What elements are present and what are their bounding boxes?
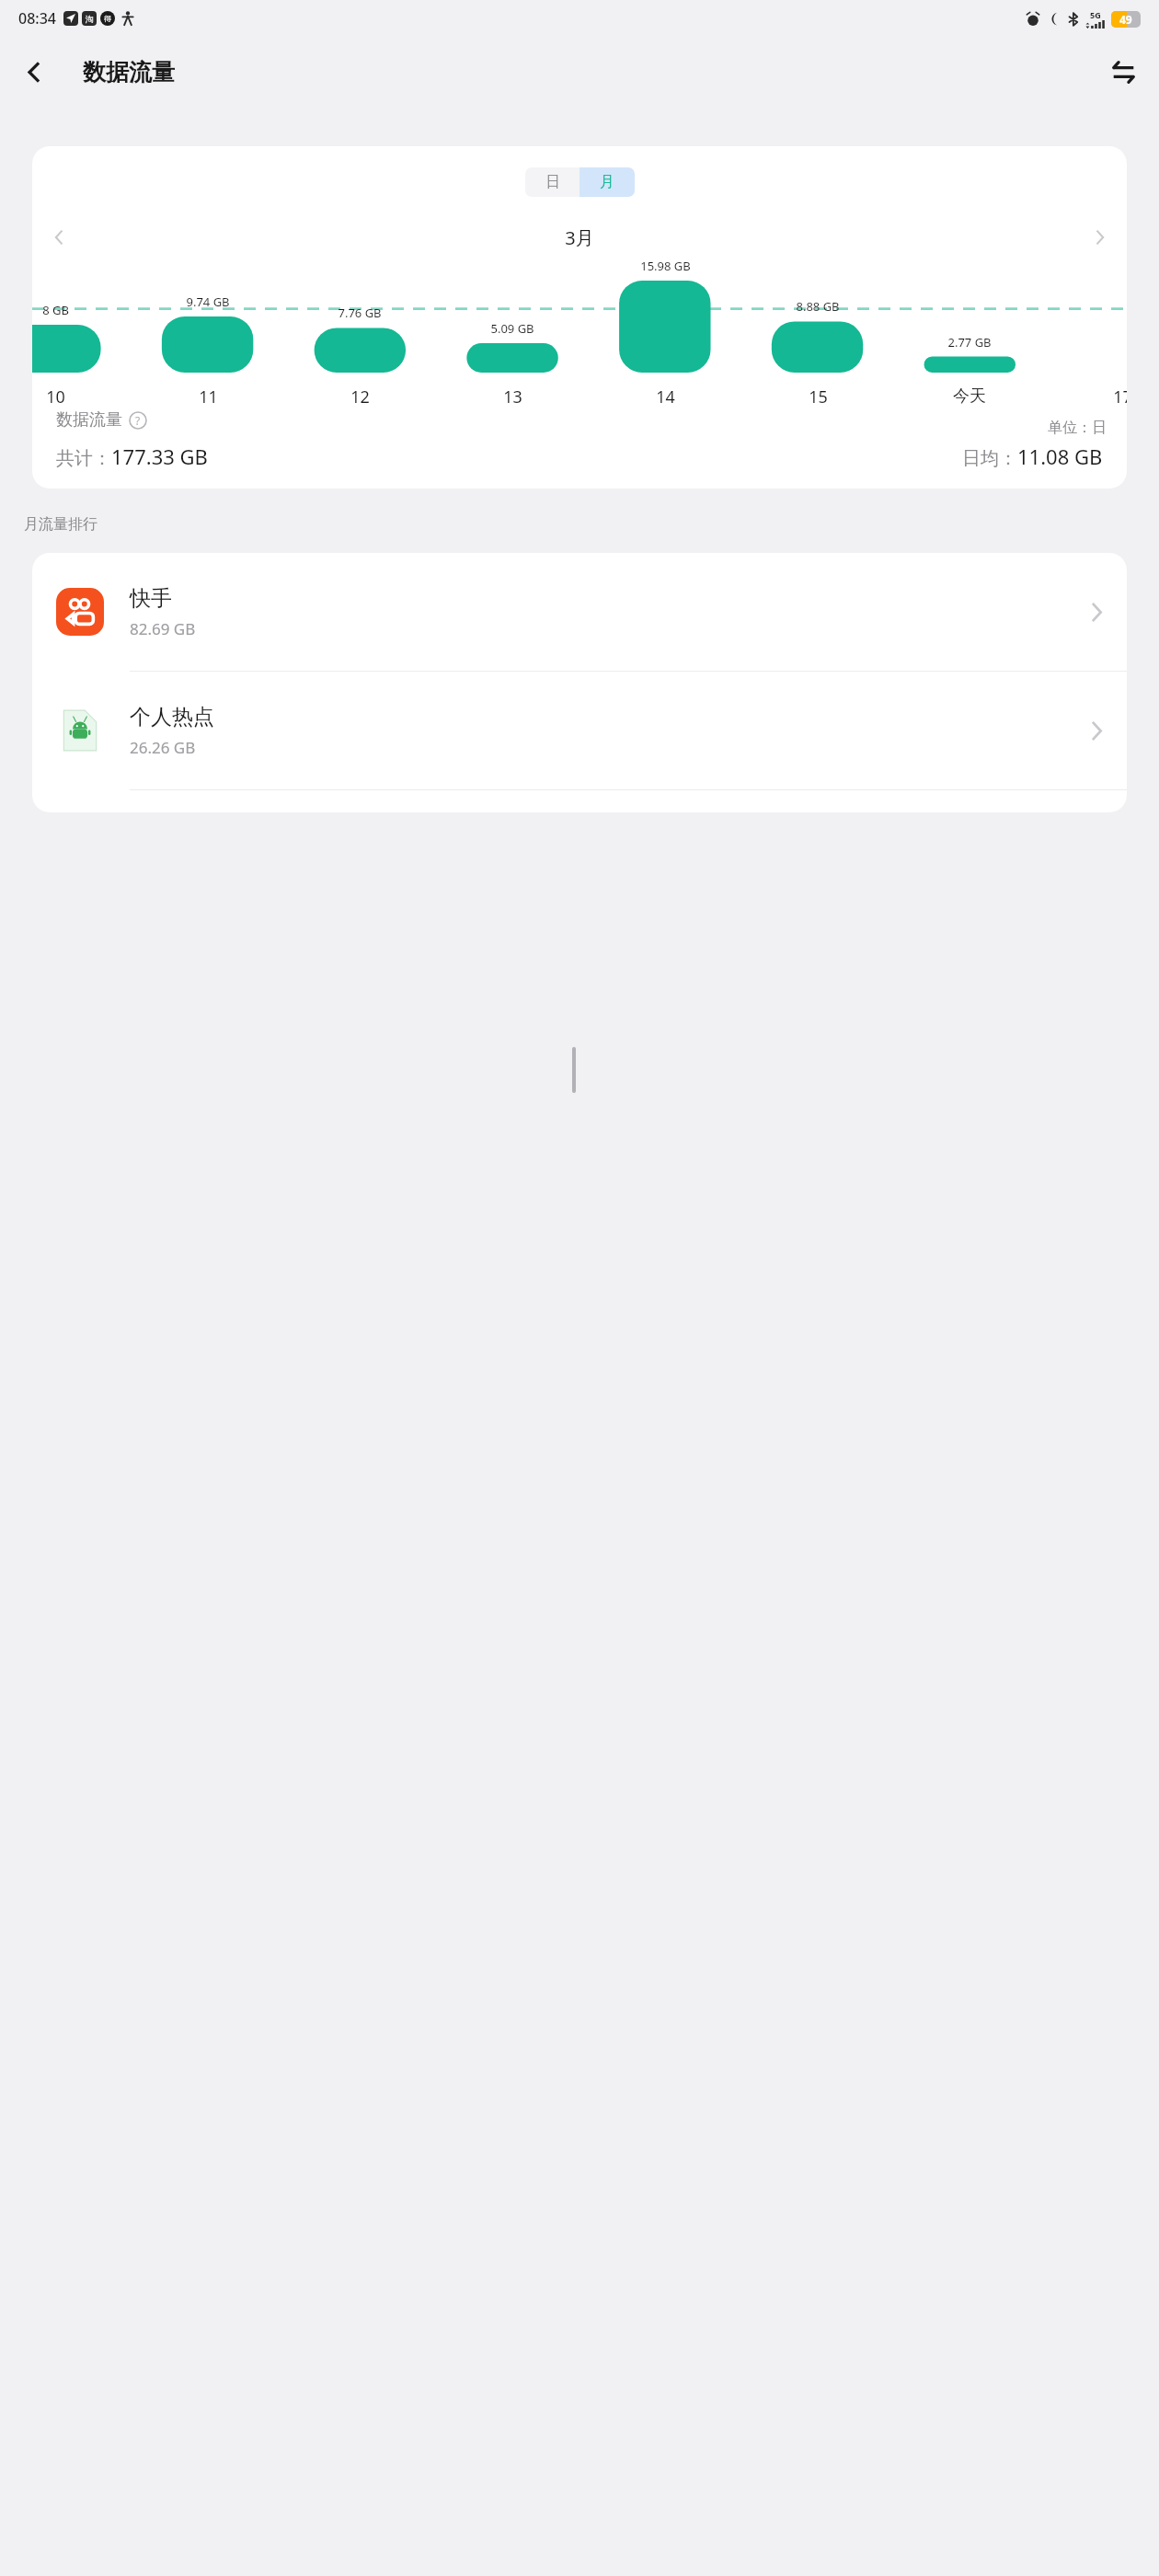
- staticText: 177.33 GB: [111, 443, 208, 470]
- staticText: 月: [600, 173, 614, 191]
- staticText: 5.09 GB: [490, 320, 534, 337]
- staticText: 月流量排行: [24, 515, 98, 534]
- staticText: 08:34: [18, 8, 56, 29]
- button[interactable]: 日: [525, 167, 579, 197]
- staticText: 个人热点: [130, 704, 214, 730]
- button[interactable]: 个人热点: [32, 672, 1127, 790]
- staticText: 26.26 GB: [130, 737, 196, 758]
- staticText: 今天: [953, 385, 986, 407]
- staticText: 15: [809, 385, 828, 408]
- staticText: 11.08 GB: [1017, 443, 1103, 470]
- staticText: 5G: [1090, 9, 1101, 20]
- staticText: 12: [350, 385, 370, 408]
- staticText: 快手: [130, 585, 172, 612]
- staticText: 数据流量: [56, 409, 122, 431]
- staticText: 共计：: [56, 447, 111, 470]
- staticText: 日均：: [962, 447, 1017, 470]
- staticText: 2.77 GB: [947, 334, 992, 351]
- staticText: 15.98 GB: [640, 258, 691, 274]
- button[interactable]: 快手: [32, 553, 1127, 672]
- staticText: 8 GB: [42, 302, 69, 318]
- staticText: 14: [656, 385, 675, 408]
- staticText: 82.69 GB: [130, 618, 196, 639]
- staticText: 8.88 GB: [796, 298, 840, 315]
- staticText: 日: [545, 173, 560, 191]
- staticText: 11: [199, 385, 218, 408]
- staticText: 17: [1113, 385, 1127, 408]
- button[interactable]: 下个月: [1079, 218, 1121, 257]
- staticText: 单位：日: [1048, 419, 1107, 437]
- button[interactable]: 月: [579, 167, 635, 197]
- button[interactable]: 返回: [9, 47, 59, 97]
- staticText: 49: [1119, 12, 1132, 27]
- button[interactable]: 切换: [1098, 47, 1148, 97]
- staticText: 数据流量: [83, 58, 175, 86]
- staticText: 淘: [86, 14, 94, 24]
- staticText: 13: [503, 385, 522, 408]
- staticText: 10: [46, 385, 65, 408]
- staticText: 得: [104, 14, 111, 23]
- button[interactable]: 说明: [129, 411, 147, 430]
- staticText: 7.76 GB: [338, 305, 382, 321]
- staticText: ?: [135, 413, 141, 428]
- staticText: 3月: [80, 225, 1079, 250]
- button[interactable]: 上个月: [38, 218, 80, 257]
- staticText: 9.74 GB: [186, 293, 230, 310]
